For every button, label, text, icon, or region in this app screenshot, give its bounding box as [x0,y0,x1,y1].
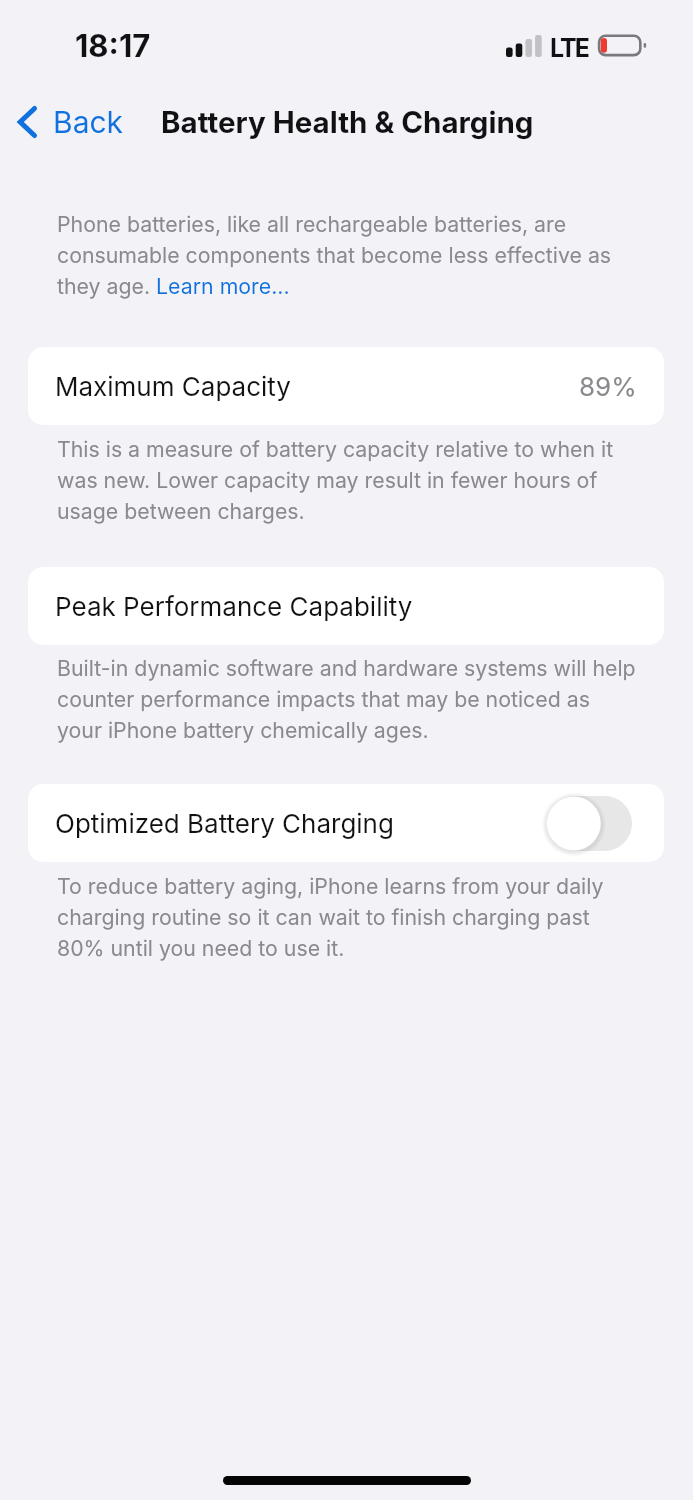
staticText: Built-in dynamic software and hardware s… [57,651,638,744]
staticText: Optimized Battery Charging [55,808,394,839]
button[interactable]: Maximum Capacity [28,347,664,425]
staticText: Battery Health & Charging [161,104,534,140]
staticText: This is a measure of battery capacity re… [57,432,638,525]
staticText: Peak Performance Capability [55,591,413,622]
staticText: Phone batteries, like all rechargeable b… [57,207,638,300]
button[interactable]: Optimized Battery Charging [28,784,664,862]
button[interactable]: Optimized Battery Charging [546,796,633,851]
staticText: LTE [550,33,589,63]
staticText: 89% [579,371,637,402]
staticText: 18:17 [75,27,151,65]
staticText: To reduce battery aging, iPhone learns f… [57,869,638,962]
button[interactable]: Back [6,94,140,150]
button[interactable]: Peak Performance Capability [28,567,664,645]
staticText: Maximum Capacity [55,371,291,402]
staticText: Back [53,104,124,140]
